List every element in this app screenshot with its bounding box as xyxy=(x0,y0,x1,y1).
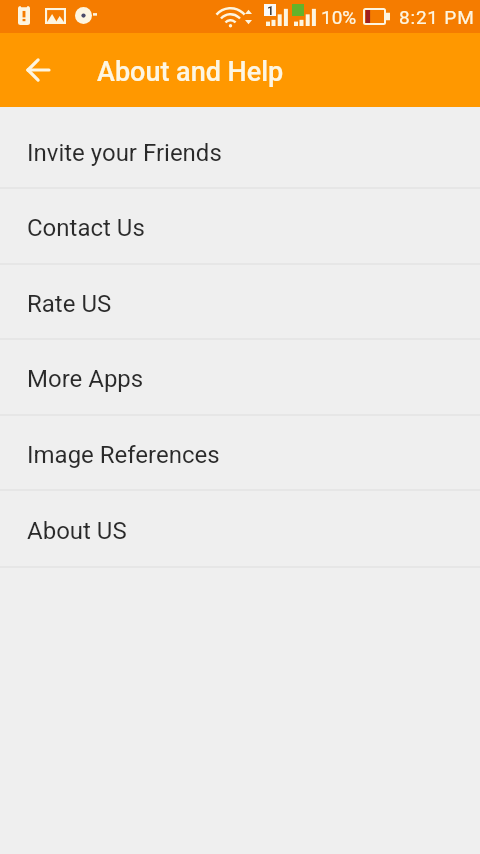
button[interactable]: About US xyxy=(0,491,480,566)
button[interactable]: Image References xyxy=(0,416,480,489)
button[interactable]: Rate US xyxy=(0,265,480,338)
staticText: Contact Us xyxy=(27,214,145,242)
button[interactable]: Contact Us xyxy=(0,189,480,263)
staticText: More Apps xyxy=(27,365,144,393)
staticText: Rate US xyxy=(27,290,112,318)
staticText: About and Help xyxy=(97,56,284,88)
staticText: Image References xyxy=(27,441,220,469)
staticText: 1 xyxy=(267,4,274,16)
button[interactable]: Back xyxy=(16,48,60,92)
staticText: 10% xyxy=(321,6,357,28)
staticText: 8:21 PM xyxy=(399,6,475,28)
staticText: Invite your Friends xyxy=(27,139,222,167)
button[interactable]: More Apps xyxy=(0,340,480,414)
button[interactable]: Invite your Friends xyxy=(0,114,480,187)
staticText: About US xyxy=(27,517,127,545)
